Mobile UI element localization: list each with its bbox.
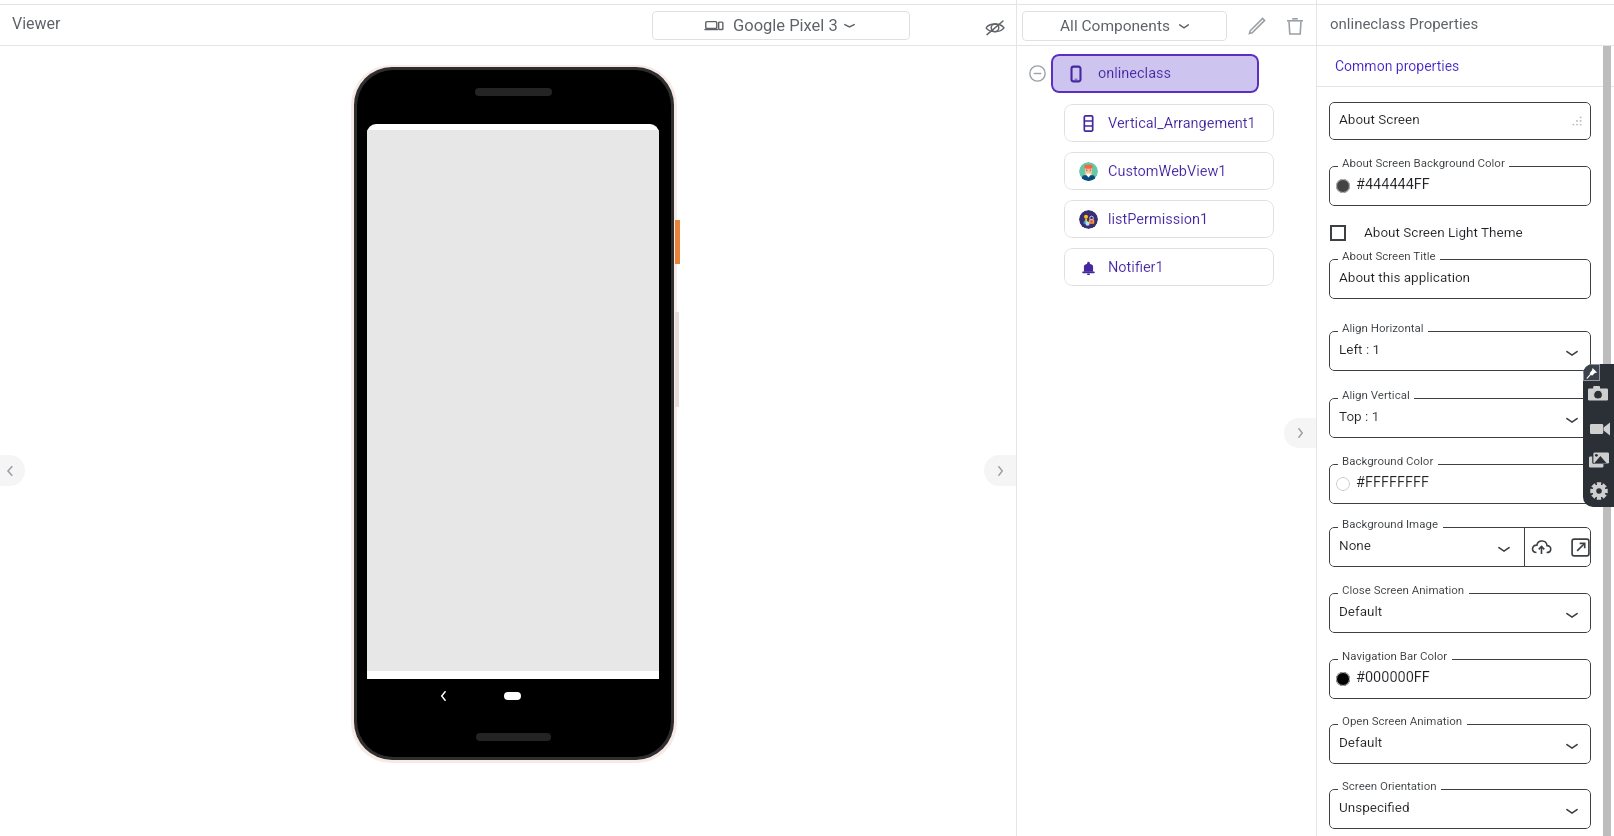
staticText: onlineclass Properties <box>1330 15 1479 33</box>
button[interactable]: Top : 1 <box>1329 398 1591 438</box>
button[interactable]: Google Pixel 3 <box>652 11 910 40</box>
button[interactable]: All Components <box>1022 11 1227 41</box>
staticText: None <box>1339 537 1371 553</box>
button[interactable]: Collapse panel <box>0 455 25 486</box>
button[interactable]: Expand properties <box>1284 418 1332 448</box>
staticText: Default <box>1339 734 1383 750</box>
staticText: About Screen <box>1339 111 1420 127</box>
button[interactable]: Delete <box>1282 13 1308 39</box>
staticText: About Screen Background Color <box>1342 156 1505 169</box>
button[interactable]: Unspecified <box>1329 789 1591 829</box>
staticText: Viewer <box>12 14 61 33</box>
button[interactable]: CustomWebView1 <box>1064 152 1274 190</box>
button[interactable]: Take screenshot <box>1584 383 1611 405</box>
button[interactable]: About this application <box>1329 259 1591 299</box>
staticText: Unspecified <box>1339 799 1410 815</box>
staticText: listPermission1 <box>1108 211 1209 228</box>
button[interactable]: Vertical_Arrangement1 <box>1064 104 1274 142</box>
button[interactable]: Default <box>1329 724 1591 764</box>
staticText: Navigation Bar Color <box>1342 649 1448 662</box>
button[interactable]: listPermission1 <box>1064 200 1274 238</box>
staticText: About this application <box>1339 269 1471 285</box>
staticText: About Screen Title <box>1342 249 1436 262</box>
staticText: All Components <box>1060 17 1170 35</box>
staticText: Left : 1 <box>1339 341 1381 357</box>
staticText: onlineclass <box>1098 65 1171 82</box>
button[interactable]: About Screen Light Theme <box>1329 222 1591 244</box>
button[interactable]: Settings <box>1585 480 1612 502</box>
staticText: Google Pixel 3 <box>733 16 838 35</box>
button[interactable]: Gallery <box>1585 449 1612 471</box>
staticText: Align Vertical <box>1342 388 1410 401</box>
button[interactable]: Default <box>1329 593 1591 633</box>
staticText: Align Horizontal <box>1342 321 1424 334</box>
staticText: Default <box>1339 603 1383 619</box>
button[interactable]: Rename <box>1244 13 1270 39</box>
staticText: Notifier1 <box>1108 259 1164 276</box>
button[interactable]: Open image <box>1570 537 1591 558</box>
button[interactable]: Pin toolbar <box>1583 364 1600 381</box>
staticText: #000000FF <box>1356 669 1430 686</box>
button[interactable]: Toggle hidden components <box>981 13 1009 41</box>
staticText: CustomWebView1 <box>1108 163 1227 180</box>
button[interactable]: Left : 1 <box>1329 331 1591 371</box>
button[interactable]: #FFFFFFFF <box>1329 464 1591 504</box>
button[interactable]: Record video <box>1586 418 1613 440</box>
staticText: #FFFFFFFF <box>1356 474 1430 491</box>
button[interactable]: #000000FF <box>1329 659 1591 699</box>
staticText: Background Color <box>1342 454 1434 467</box>
staticText: Vertical_Arrangement1 <box>1108 115 1256 132</box>
staticText: Screen Orientation <box>1342 779 1437 792</box>
staticText: Open Screen Animation <box>1342 714 1463 727</box>
staticText: #444444FF <box>1356 176 1430 193</box>
button[interactable]: About Screen <box>1329 102 1591 140</box>
staticText: Background Image <box>1342 517 1439 530</box>
button[interactable]: Common properties <box>1335 58 1460 74</box>
button[interactable]: Upload image <box>1530 536 1553 559</box>
staticText: About Screen Light Theme <box>1364 224 1523 240</box>
button[interactable]: onlineclass <box>1051 54 1259 93</box>
staticText: Top : 1 <box>1339 408 1380 424</box>
button[interactable]: Expand panel <box>984 455 1032 486</box>
button[interactable]: Notifier1 <box>1064 248 1274 286</box>
staticText: Close Screen Animation <box>1342 583 1465 596</box>
button[interactable]: #444444FF <box>1329 166 1591 206</box>
